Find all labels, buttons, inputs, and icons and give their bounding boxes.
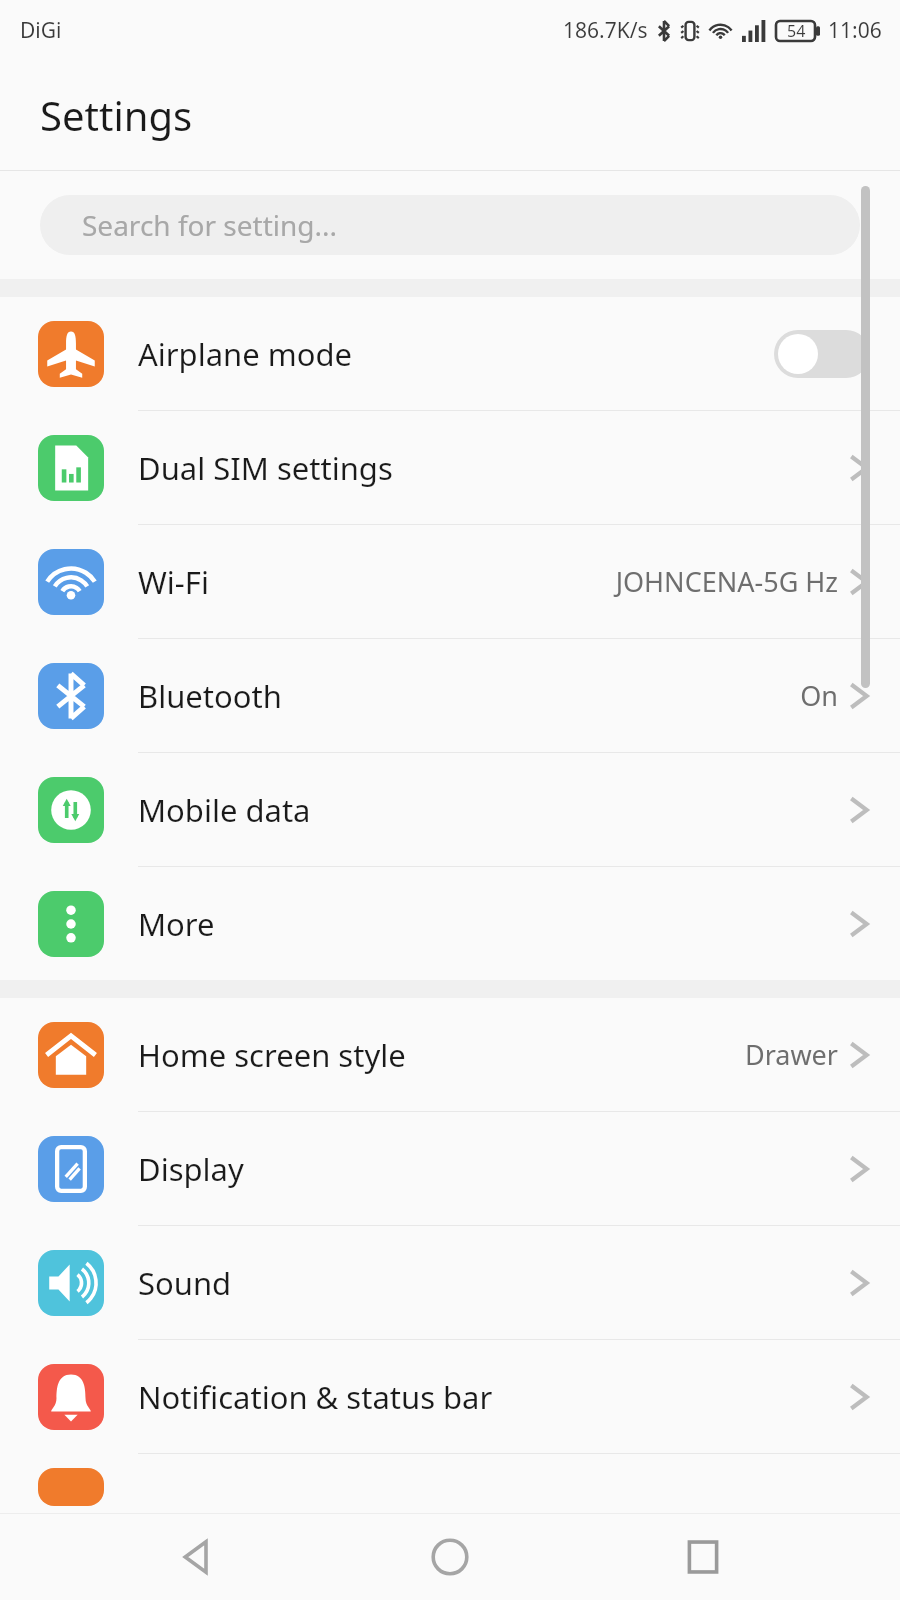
button[interactable]: Airplane mode [0,297,900,411]
staticText: Drawer [638,1036,838,1073]
button[interactable]: Airplane mode toggle [774,330,870,378]
button[interactable]: Mobile data [0,753,900,867]
button[interactable]: Notification & status bar [0,1340,900,1454]
staticText: Search for setting... [82,206,337,244]
staticText: Wi-Fi [138,561,608,603]
button[interactable]: Bluetooth [0,639,900,753]
staticText: 54 [787,20,806,42]
staticText: Mobile data [138,789,848,831]
button[interactable]: Home [395,1514,505,1600]
staticText: Home screen style [138,1034,638,1076]
staticText: On [638,677,838,714]
staticText: Dual SIM settings [138,447,848,489]
button[interactable]: Display [0,1112,900,1226]
button[interactable]: Home screen style [0,998,900,1112]
staticText: More [138,903,848,945]
button[interactable]: Dual SIM settings [0,411,900,525]
staticText: DiGi [20,16,62,45]
staticText: Display [138,1148,848,1190]
button[interactable]: Back [143,1514,253,1600]
button[interactable]: Search for setting... [40,195,860,255]
staticText: 11:06 [828,16,882,45]
button[interactable]: More [0,867,900,980]
button[interactable]: Wi-Fi [0,525,900,639]
staticText: Sound [138,1262,848,1304]
staticText: Settings [40,88,193,142]
staticText: Bluetooth [138,675,638,717]
button[interactable]: Recent apps [648,1514,758,1600]
staticText: 186.7K/s [563,16,648,45]
staticText: Notification & status bar [138,1376,848,1418]
staticText: Airplane mode [138,333,774,375]
staticText: JOHNCENA-5G Hz [608,563,838,600]
button[interactable]: Sound [0,1226,900,1340]
